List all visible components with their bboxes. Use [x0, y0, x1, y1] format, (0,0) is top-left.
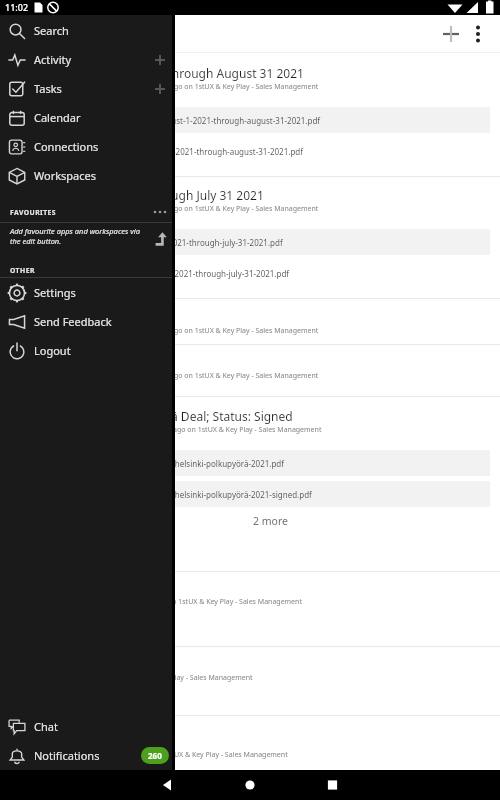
- staticText: Search: [34, 23, 69, 38]
- staticText: Report created by Benjamin Johnsson, 4 m…: [10, 326, 319, 336]
- staticText: Contract signed by Benjamin Johnsson, 7 …: [10, 425, 322, 435]
- button[interactable]: More options: [461, 17, 495, 51]
- button[interactable]: Edit favourites: [152, 230, 170, 248]
- staticText: 1stux-keyplay-21-signed-sales-rep-august…: [10, 146, 304, 157]
- button[interactable]: Send Feedback: [0, 307, 175, 336]
- staticText: Settings: [34, 285, 76, 300]
- staticText: 260: [148, 750, 162, 761]
- staticText: 1stux-keyplay-21-monthly-sales-report-au…: [10, 115, 321, 126]
- staticText: Chat: [34, 719, 58, 734]
- button[interactable]: Company founded: [0, 572, 500, 647]
- button[interactable]: Workspace created: [0, 716, 500, 776]
- staticText: OTHER: [10, 266, 35, 275]
- button[interactable]: First deal closed: [0, 647, 500, 716]
- staticText: Tasks: [34, 81, 62, 96]
- button[interactable]: Connections: [0, 132, 175, 161]
- button[interactable]: Tasks: [0, 74, 175, 103]
- button[interactable]: Workspaces: [0, 161, 175, 190]
- button[interactable]: Notifications: [0, 741, 175, 770]
- button[interactable]: Sales report: July 1 2021 through July 3…: [0, 177, 500, 299]
- staticText: 1stux-keyplay-sales-deal-contract-kauppu…: [10, 489, 312, 500]
- button[interactable]: Quarterly sales update: [0, 299, 500, 345]
- button[interactable]: Activity: [0, 45, 175, 74]
- staticText: Sales report: August 1 2021 through Augu…: [10, 65, 304, 81]
- button[interactable]: 1stux-keyplay-sales-deal-contract-kauppu…: [0, 481, 490, 507]
- staticText: 1stux-keyplay-monthly-sales-report-july-…: [10, 237, 283, 248]
- staticText: Report created by Benjamin Johnsson, 2 m…: [10, 82, 319, 92]
- staticText: Kauppula Helsinki Polkupyörä Deal; Statu…: [10, 408, 293, 424]
- button[interactable]: 1stux-keyplay-monthly-sales-report-july-…: [0, 229, 490, 255]
- button[interactable]: Logout: [0, 336, 175, 365]
- staticText: Activity: [34, 52, 72, 67]
- staticText: Quarterly sales update: [10, 354, 139, 370]
- staticText: 1stux-keyplay-sales-deal-contract-kauppu…: [10, 458, 285, 469]
- staticText: 1stux-keyplay-signed-monthly-report-july…: [10, 268, 290, 279]
- staticText: 11:02: [5, 1, 29, 13]
- staticText: 2 more: [253, 514, 288, 528]
- button[interactable]: Calendar: [0, 103, 175, 132]
- staticText: Report created by Benjamin Johnsson, 6 m…: [10, 371, 319, 381]
- button[interactable]: Search: [0, 16, 175, 45]
- button[interactable]: Favourites options: [150, 202, 170, 222]
- staticText: Workspaces: [34, 168, 97, 183]
- button[interactable]: 1stux-keyplay-21-signed-sales-rep-august…: [0, 138, 490, 164]
- button[interactable]: 1stux-keyplay-21-monthly-sales-report-au…: [0, 107, 490, 133]
- staticText: Send Feedback: [34, 314, 112, 329]
- staticText: Connections: [34, 139, 99, 154]
- button[interactable]: 1stux-keyplay-sales-deal-contract-kauppu…: [0, 450, 490, 476]
- button[interactable]: Kauppula Helsinki Polkupyörä Deal; Statu…: [0, 397, 500, 572]
- staticText: Logout: [34, 343, 71, 358]
- button[interactable]: 2 more: [0, 510, 500, 532]
- button[interactable]: Sales report: August 1 2021 through Augu…: [0, 53, 500, 177]
- button[interactable]: Chat: [0, 712, 175, 741]
- staticText: Quarterly sales update: [10, 309, 139, 325]
- staticText: Add favourite apps and workspaces via th…: [10, 226, 142, 246]
- staticText: Sales report: July 1 2021 through July 3…: [10, 187, 264, 203]
- staticText: Workspace created: [10, 733, 118, 749]
- staticText: FAVOURITES: [10, 208, 56, 217]
- staticText: Calendar: [34, 110, 81, 125]
- button[interactable]: Add Tasks: [148, 77, 172, 101]
- staticText: Created by Benjamin Johnsson, 2 years ag…: [10, 750, 288, 760]
- staticText: Report created by Benjamin Johnsson, 3 m…: [10, 204, 319, 214]
- button[interactable]: Add: [434, 17, 468, 51]
- button[interactable]: Add Activity: [148, 48, 172, 72]
- staticText: Company 1stUX & Key Play founded in JUL …: [10, 597, 302, 607]
- staticText: First deal was closed in JAN 2021 on 1st…: [10, 673, 253, 683]
- button[interactable]: Settings: [0, 278, 175, 307]
- button[interactable]: Quarterly sales update: [0, 345, 500, 397]
- button[interactable]: 1stux-keyplay-signed-monthly-report-july…: [0, 260, 490, 286]
- staticText: Notifications: [34, 748, 100, 763]
